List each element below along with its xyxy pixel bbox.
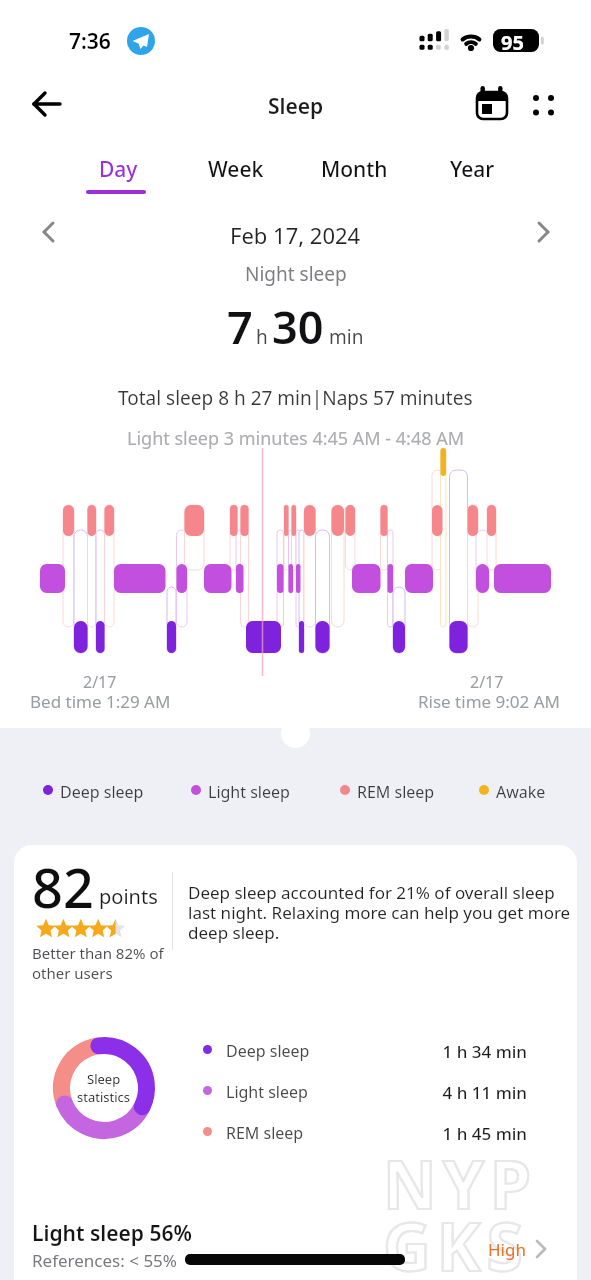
staticText: Sleep [87,1070,121,1088]
staticText: References: < 55% [32,1249,177,1272]
staticText: Light sleep 3 minutes 4:45 AM - 4:48 AM [127,426,465,451]
staticText: REM sleep [357,781,435,803]
staticText: points [99,883,158,910]
button[interactable] [24,82,68,126]
staticText: 4 h 11 min [427,1081,527,1104]
staticText: NYP [383,1138,537,1228]
staticText: REM sleep [226,1122,304,1144]
button[interactable] [526,88,560,122]
staticText: Month [321,155,388,184]
staticText: Night sleep [245,261,347,287]
staticText: h [256,324,268,350]
staticText: Deep sleep [60,781,144,803]
staticText: Light sleep [208,781,290,803]
staticText: Awake [496,781,546,803]
button[interactable]: Month [304,155,404,205]
staticText: statistics [77,1088,131,1106]
staticText: Deep sleep accounted for 21% of overall … [188,881,555,904]
staticText: min [329,324,364,350]
button[interactable]: Week [186,155,286,205]
button[interactable]: Year [422,155,522,205]
staticText: High [488,1238,526,1261]
staticText: Light sleep 56% [32,1219,192,1248]
staticText: 7 [227,296,253,357]
staticText: 95 [501,29,524,56]
button[interactable]: High [440,1228,560,1268]
staticText: 1 h 34 min [427,1040,527,1063]
staticText: other users [32,963,113,983]
staticText: Bed time 1:29 AM [30,690,171,713]
staticText: Day [99,155,138,184]
staticText: deep sleep. [188,921,280,944]
staticText: 1 h 45 min [427,1122,527,1145]
staticText: Deep sleep [226,1040,310,1062]
staticText: 2/17 [470,671,504,693]
staticText: Feb 17, 2024 [230,220,361,250]
staticText: 7:36 [69,27,111,56]
staticText: Total sleep 8 h 27 min|Naps 57 minutes [118,385,473,411]
staticText: 82 [32,850,94,924]
staticText: Year [450,155,495,184]
staticText: Week [208,155,264,184]
staticText: Rise time 9:02 AM [418,690,560,713]
staticText: 30 [272,296,324,357]
button[interactable] [470,82,514,126]
button[interactable]: Day [68,155,168,205]
staticText: Better than 82% of [32,943,164,963]
staticText: last night. Relaxing more can help you g… [188,901,571,924]
staticText: Sleep [268,92,324,121]
staticText: Light sleep [226,1081,308,1103]
staticText: GKS [383,1200,529,1280]
staticText: 2/17 [83,671,117,693]
